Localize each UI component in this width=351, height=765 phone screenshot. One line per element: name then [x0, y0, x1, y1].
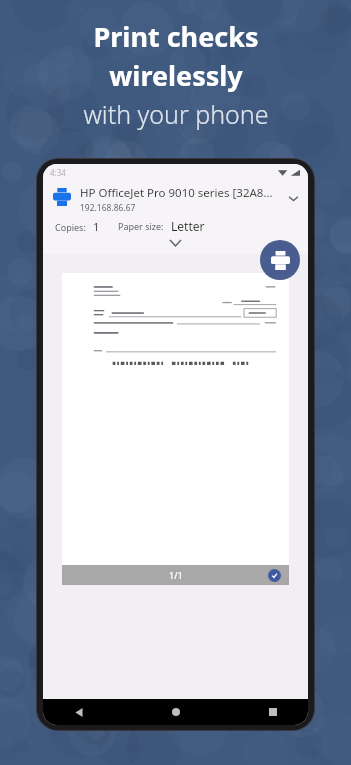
staticText: 1/1: [169, 569, 183, 581]
staticText: Print checks: [93, 18, 259, 55]
button[interactable]: Home: [163, 699, 189, 725]
staticText: Copies:: [55, 221, 86, 233]
staticText: Letter: [171, 218, 205, 234]
staticText: 1: [93, 219, 100, 234]
button[interactable]: Copies:: [55, 219, 100, 234]
button[interactable]: Print: [260, 240, 300, 280]
staticText: wirelessly: [109, 57, 243, 94]
staticText: with your phone: [83, 97, 269, 131]
staticText: HP OfficeJet Pro 9010 series [32A8…: [80, 185, 273, 201]
button[interactable]: Back: [65, 699, 91, 725]
button[interactable]: HP OfficeJet Pro 9010 series [32A8…: [43, 181, 308, 214]
button[interactable]: Page selected: [268, 569, 281, 582]
staticText: Paper size:: [118, 220, 164, 232]
button[interactable]: Recent apps: [260, 699, 286, 725]
button[interactable]: [62, 273, 289, 565]
button[interactable]: Paper size:: [118, 218, 205, 234]
button[interactable]: Expand options: [43, 234, 308, 252]
button[interactable]: Select printer: [284, 189, 302, 207]
staticText: 192.168.86.67: [80, 202, 136, 214]
staticText: 4:34: [50, 167, 66, 178]
